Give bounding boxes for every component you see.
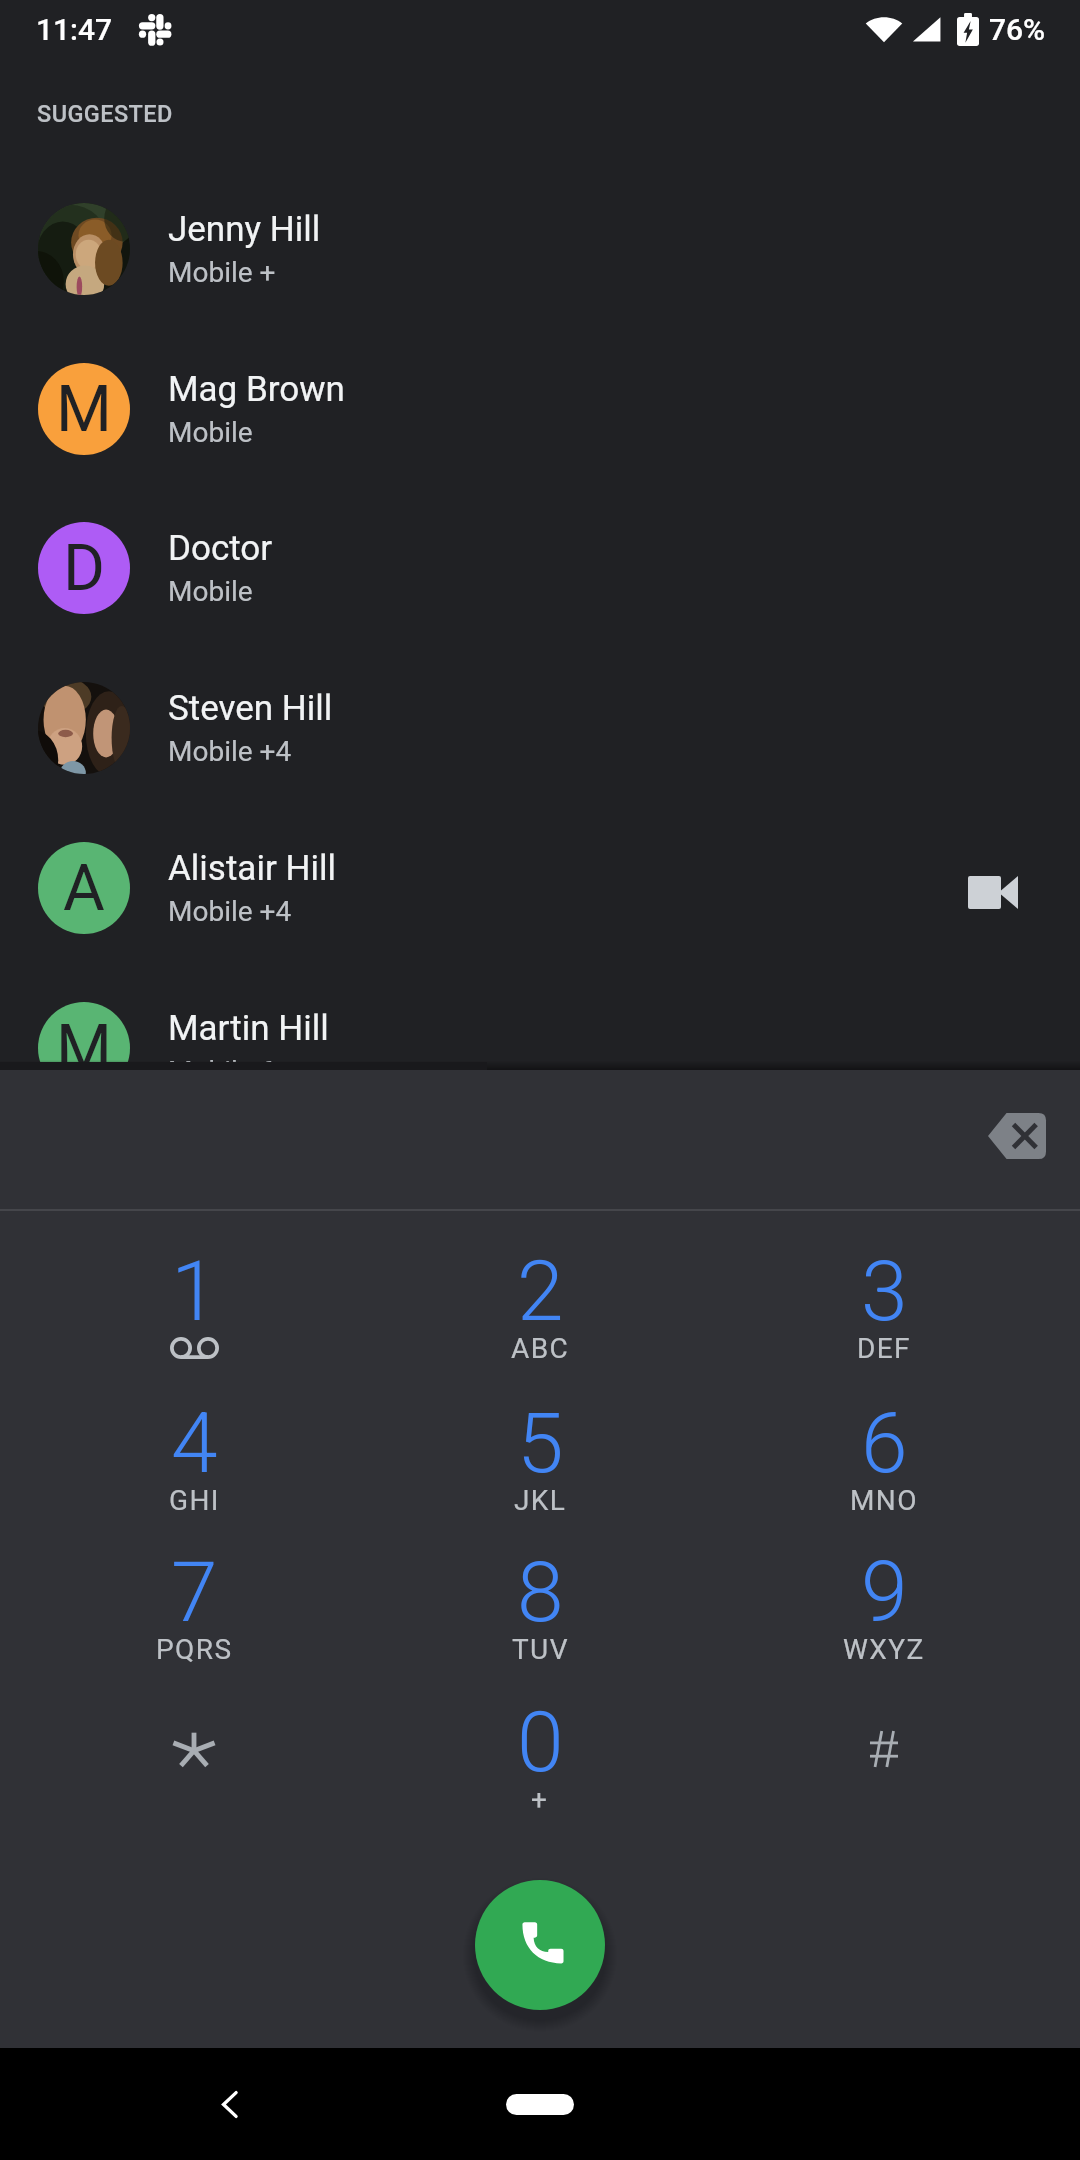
staticText: 4	[171, 1394, 218, 1492]
staticText: GHI	[169, 1484, 220, 1517]
button[interactable]: 0	[370, 1666, 710, 1816]
button[interactable]: 5	[370, 1367, 710, 1517]
button[interactable]: Back	[195, 2069, 265, 2139]
staticText: 0	[517, 1693, 564, 1791]
staticText: Mobile 6	[168, 1055, 276, 1088]
staticText: Alistair Hill	[168, 848, 336, 889]
button[interactable]: 7	[24, 1516, 364, 1666]
button[interactable]: Jenny Hill	[0, 170, 1080, 328]
staticText: ABC	[511, 1332, 570, 1365]
staticText: JKL	[514, 1484, 567, 1517]
staticText: Mobile +4	[168, 895, 292, 928]
staticText: Jenny Hill	[168, 209, 321, 250]
button[interactable]: 6	[714, 1367, 1054, 1517]
button[interactable]: 8	[370, 1516, 710, 1666]
staticText: Steven Hill	[168, 688, 333, 729]
staticText: Mobile	[168, 416, 253, 449]
button[interactable]: 4	[24, 1367, 364, 1517]
button[interactable]: M	[0, 969, 1080, 1127]
button[interactable]: 1	[24, 1215, 364, 1365]
button[interactable]: Video call	[957, 856, 1029, 928]
button[interactable]: Steven Hill	[0, 649, 1080, 807]
staticText: 8	[517, 1543, 564, 1641]
staticText: M	[56, 372, 112, 447]
staticText: Mobile +	[168, 256, 276, 289]
staticText: +	[531, 1783, 549, 1816]
staticText: 3	[861, 1242, 908, 1340]
button[interactable]: 9	[714, 1516, 1054, 1666]
staticText: 11:47	[36, 12, 113, 47]
button[interactable]: Home	[470, 2074, 610, 2134]
staticText: 9	[861, 1543, 908, 1641]
staticText: Mobile +4	[168, 735, 292, 768]
button[interactable]: A	[0, 809, 1080, 967]
button[interactable]: #	[714, 1666, 1054, 1816]
staticText: PQRS	[156, 1633, 233, 1666]
staticText: M	[56, 1011, 112, 1086]
staticText: MNO	[850, 1484, 918, 1517]
staticText: Mag Brown	[168, 369, 345, 410]
staticText: Martin Hill	[168, 1008, 329, 1049]
button[interactable]: D	[0, 489, 1080, 647]
staticText: SUGGESTED	[37, 100, 173, 128]
staticText: 76%	[989, 12, 1046, 47]
staticText: Mobile	[168, 575, 253, 608]
button[interactable]: *	[24, 1666, 364, 1816]
staticText: D	[63, 531, 105, 606]
staticText: 2	[517, 1242, 564, 1340]
button[interactable]: Call	[475, 1880, 605, 2010]
staticText: 5	[517, 1394, 564, 1492]
staticText: 1	[171, 1242, 218, 1340]
button[interactable]: Backspace	[974, 1093, 1060, 1179]
staticText: DEF	[857, 1332, 911, 1365]
button[interactable]: 2	[370, 1215, 710, 1365]
staticText: Doctor	[168, 528, 273, 569]
staticText: TUV	[512, 1633, 569, 1666]
staticText: 7	[171, 1543, 218, 1641]
button[interactable]: 3	[714, 1215, 1054, 1365]
staticText: 6	[861, 1394, 908, 1492]
staticText: WXYZ	[843, 1633, 925, 1666]
button[interactable]: M	[0, 330, 1080, 488]
staticText: A	[63, 851, 105, 926]
